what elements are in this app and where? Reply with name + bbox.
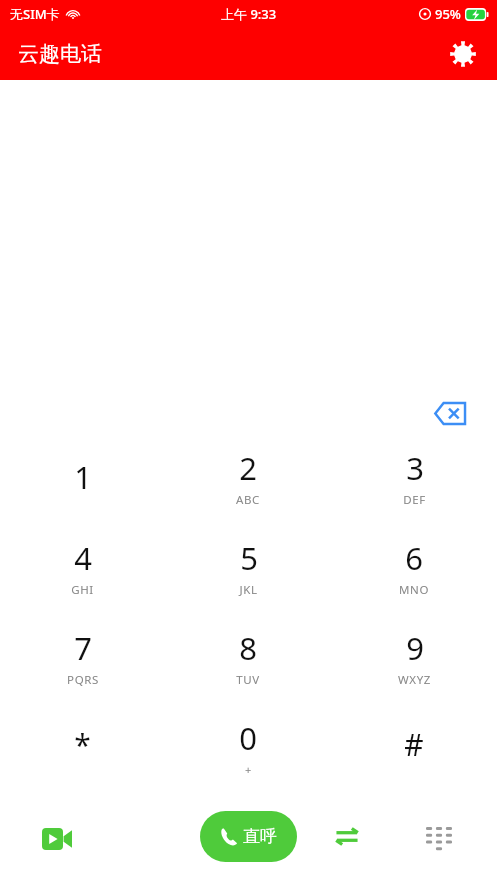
staticText: PQRS [67,672,99,688]
button[interactable]: 直呼 [200,811,297,862]
staticText: 6 [405,537,423,579]
button[interactable]: 8 [165,615,331,705]
staticText: 直呼 [243,826,277,847]
staticText: 4 [74,537,92,579]
staticText: 2 [239,447,257,489]
staticText: MNO [399,582,429,598]
staticText: JKL [239,582,258,598]
button[interactable]: Video call [34,816,80,862]
button[interactable]: 3 [331,435,497,525]
button[interactable]: 0 [165,705,331,795]
staticText: 8 [239,627,257,669]
button[interactable]: Backspace [429,392,471,434]
staticText: DEF [403,492,426,508]
staticText: 无SIM卡 [10,5,60,23]
button[interactable]: 2 [165,435,331,525]
staticText: * [74,724,91,765]
button[interactable]: 5 [165,525,331,615]
staticText: # [404,724,424,765]
staticText: 7 [74,627,92,669]
staticText: 95% [435,5,461,23]
staticText: ABC [236,492,260,508]
button[interactable]: 6 [331,525,497,615]
staticText: 3 [406,447,424,489]
button[interactable]: # [331,705,497,795]
button[interactable]: 7 [0,615,165,705]
staticText: + [245,762,252,777]
staticText: 5 [240,537,258,579]
button[interactable]: Keypad [417,817,461,861]
button[interactable]: 4 [0,525,165,615]
button[interactable]: Settings [443,34,483,74]
button[interactable]: Switch mode [326,815,368,857]
staticText: TUV [236,672,260,688]
staticText: WXYZ [398,672,431,688]
staticText: 9 [406,627,424,669]
button[interactable]: * [0,705,165,795]
staticText: 上午 9:33 [221,5,277,23]
button[interactable]: 1 [0,435,165,525]
staticText: 0 [239,717,257,759]
button[interactable]: 9 [331,615,497,705]
staticText: 云趣电话 [18,41,102,67]
staticText: 1 [74,456,92,498]
staticText: GHI [71,582,94,598]
